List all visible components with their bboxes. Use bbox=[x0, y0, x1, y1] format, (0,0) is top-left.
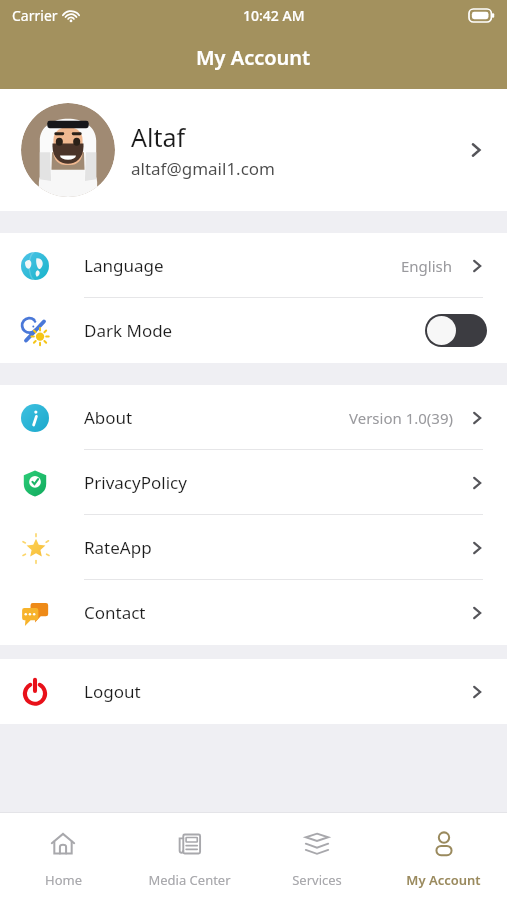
staticText: Dark Mode bbox=[84, 319, 173, 342]
staticText: Logout bbox=[84, 680, 141, 703]
staticText: Language bbox=[84, 254, 164, 277]
button[interactable]: Logout bbox=[0, 659, 507, 724]
staticText: My Account bbox=[196, 44, 311, 71]
staticText: My Account bbox=[406, 871, 481, 889]
button[interactable]: RateApp bbox=[0, 515, 507, 580]
staticText: Altaf bbox=[131, 120, 186, 154]
button[interactable]: Language bbox=[0, 233, 507, 298]
staticText: Contact bbox=[84, 601, 146, 624]
button[interactable]: Contact bbox=[0, 580, 507, 645]
staticText: 10:42 AM bbox=[243, 6, 305, 25]
button[interactable]: Altaf bbox=[0, 89, 507, 211]
button[interactable]: Services bbox=[253, 813, 380, 900]
staticText: Carrier bbox=[12, 6, 58, 25]
staticText: Home bbox=[45, 871, 82, 889]
button[interactable]: Home bbox=[0, 813, 126, 900]
staticText: Services bbox=[292, 871, 342, 889]
button[interactable]: Dark Mode bbox=[0, 298, 507, 363]
staticText: English bbox=[401, 256, 453, 276]
button[interactable]: About bbox=[0, 385, 507, 450]
button[interactable]: My Account bbox=[380, 813, 507, 900]
staticText: Media Center bbox=[148, 871, 231, 889]
button[interactable]: Media Center bbox=[126, 813, 253, 900]
staticText: Version 1.0(39) bbox=[349, 408, 453, 428]
staticText: PrivacyPolicy bbox=[84, 471, 187, 494]
staticText: altaf@gmail1.com bbox=[131, 157, 276, 180]
button[interactable]: PrivacyPolicy bbox=[0, 450, 507, 515]
staticText: RateApp bbox=[84, 536, 152, 559]
button[interactable]: Dark Mode toggle bbox=[425, 314, 487, 347]
staticText: About bbox=[84, 406, 133, 429]
